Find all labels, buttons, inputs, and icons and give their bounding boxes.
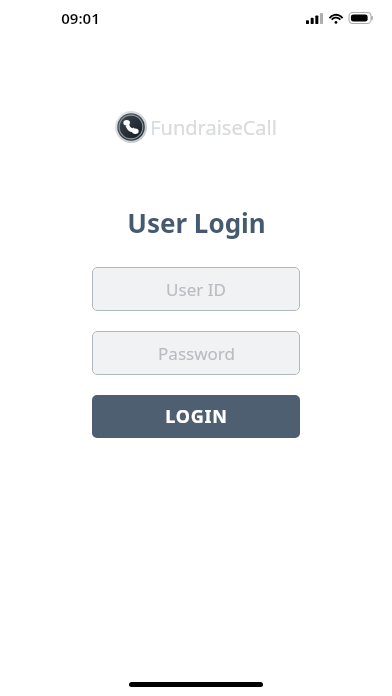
staticText: User ID [166, 278, 226, 301]
staticText: 09:01 [61, 8, 100, 28]
staticText: LOGIN [165, 404, 228, 429]
button[interactable]: Password [92, 331, 300, 375]
staticText: FundraiseCall [150, 114, 277, 141]
staticText: User Login [127, 205, 266, 240]
staticText: Password [158, 342, 235, 365]
button[interactable]: User ID [92, 267, 300, 311]
button[interactable]: LOGIN [92, 395, 300, 438]
